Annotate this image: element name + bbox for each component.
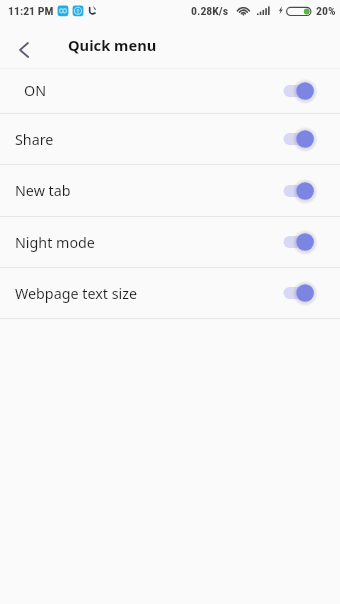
staticText: Share [15, 130, 54, 149]
button[interactable]: Webpage text size [0, 268, 340, 318]
button[interactable]: Back [10, 36, 38, 64]
button[interactable]: Toggle Night mode [282, 232, 314, 252]
button[interactable]: Night mode [0, 217, 340, 267]
staticText: ON [24, 81, 47, 100]
button[interactable]: Toggle ON [282, 81, 314, 101]
button[interactable]: New tab [0, 165, 340, 216]
button[interactable]: Toggle Webpage text size [282, 283, 314, 303]
staticText: Webpage text size [15, 284, 137, 303]
button[interactable]: Toggle New tab [282, 181, 314, 201]
staticText: 11:21 PM [8, 4, 54, 18]
button[interactable]: Share [0, 114, 340, 164]
staticText: New tab [15, 181, 71, 200]
button[interactable]: ON [0, 69, 340, 113]
button[interactable]: Toggle Share [282, 129, 314, 149]
staticText: Quick menu [68, 35, 157, 55]
staticText: 20% [316, 4, 336, 18]
staticText: 0.28K/s [191, 4, 229, 18]
staticText: Night mode [15, 233, 95, 252]
